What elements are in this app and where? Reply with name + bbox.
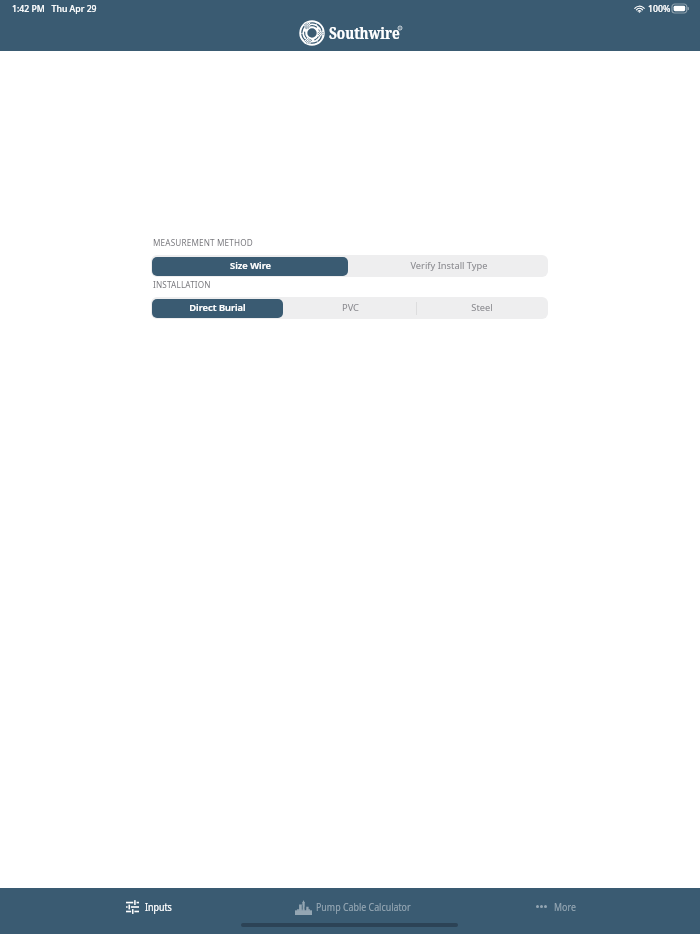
- staticText: INSTALLATION: [153, 279, 211, 290]
- staticText: Inputs: [145, 899, 172, 914]
- staticText: MEASUREMENT METHOD: [153, 237, 253, 248]
- staticText: Direct Burial: [189, 301, 246, 314]
- staticText: Verify Install Type: [410, 259, 488, 272]
- button[interactable]: Size Wire: [151, 255, 349, 277]
- staticText: Pump Cable Calculator: [316, 899, 411, 914]
- staticText: More: [554, 899, 576, 914]
- button[interactable]: Verify Install Type: [349, 255, 548, 277]
- button[interactable]: Pump Cable Calculator tab: [295, 888, 437, 934]
- button[interactable]: PVC: [284, 297, 416, 319]
- staticText: Southwire: [329, 22, 400, 44]
- button[interactable]: More tab: [536, 888, 582, 934]
- staticText: PVC: [342, 301, 359, 314]
- button[interactable]: Direct Burial: [151, 297, 284, 319]
- staticText: Size Wire: [230, 259, 271, 272]
- staticText: 1:42 PM Thu Apr 29: [12, 3, 97, 15]
- button[interactable]: Steel: [416, 297, 548, 319]
- staticText: Steel: [471, 301, 493, 314]
- button[interactable]: Inputs tab: [126, 888, 180, 934]
- staticText: 100%: [648, 3, 671, 15]
